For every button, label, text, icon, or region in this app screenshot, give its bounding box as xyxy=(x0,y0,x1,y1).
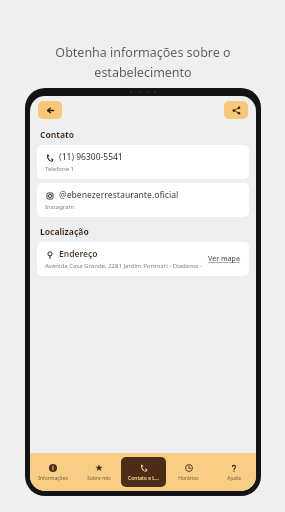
button[interactable]: Contato e L... xyxy=(121,457,166,487)
staticText: Ajuda xyxy=(227,475,241,482)
staticText: estabelecimento xyxy=(94,64,192,81)
staticText: (11) 96300-5541 xyxy=(59,151,123,163)
button[interactable]: Ajuda xyxy=(211,463,256,482)
button[interactable]: (11) 96300-5541 xyxy=(37,145,249,179)
staticText: Avenida Casa Grande, 2281 Jardim Portina… xyxy=(45,262,204,270)
staticText: Obtenha informações sobre o xyxy=(55,44,231,61)
staticText: Endereço xyxy=(59,248,98,260)
staticText: Ver mapa xyxy=(208,254,240,264)
staticText: Informações xyxy=(38,475,68,482)
staticText: @ebenezerrestaurante.oficial xyxy=(59,189,179,201)
staticText: Sobre nós xyxy=(87,475,111,482)
staticText: Localização xyxy=(40,226,89,238)
button[interactable]: Voltar xyxy=(38,101,62,119)
staticText: Horários xyxy=(178,475,199,482)
button[interactable]: Ver mapa xyxy=(207,252,241,266)
button[interactable]: Compartilhar xyxy=(224,101,248,119)
staticText: Instagram xyxy=(45,203,75,211)
button[interactable]: Endereço xyxy=(37,242,249,276)
staticText: Telefone 1 xyxy=(45,165,75,173)
staticText: Contato e L... xyxy=(128,475,159,482)
staticText: Contato xyxy=(40,129,75,141)
button[interactable]: Sobre nós xyxy=(76,463,121,482)
button[interactable]: @ebenezerrestaurante.oficial xyxy=(37,183,249,217)
button[interactable]: Informações xyxy=(30,463,76,482)
button[interactable]: Horários xyxy=(166,463,211,482)
